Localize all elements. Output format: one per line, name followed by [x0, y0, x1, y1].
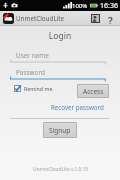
staticText: User name [16, 51, 49, 60]
staticText: Login [0, 30, 120, 42]
staticText: Password [16, 68, 45, 77]
staticText: 16:36 [100, 1, 118, 11]
staticText: UnmetCloudLite v.1.0.15 [33, 166, 88, 173]
button[interactable]: Recover password [51, 103, 104, 111]
button[interactable]: Account [91, 14, 100, 23]
button[interactable]: Remind me [14, 85, 53, 92]
button[interactable]: Access [77, 84, 109, 98]
button[interactable]: Help [105, 14, 115, 24]
staticText: Remind me [24, 85, 53, 92]
button[interactable]: User name [10, 50, 106, 61]
button[interactable]: UnmetCloudLite logo [3, 13, 14, 24]
staticText: Signup [49, 126, 71, 135]
staticText: UnmetCloudLite [16, 14, 65, 23]
staticText: Access [83, 87, 104, 96]
button[interactable]: Signup [43, 122, 77, 138]
staticText: ? [108, 14, 113, 24]
staticText: 100% [72, 2, 88, 10]
button[interactable]: Password [10, 67, 106, 78]
